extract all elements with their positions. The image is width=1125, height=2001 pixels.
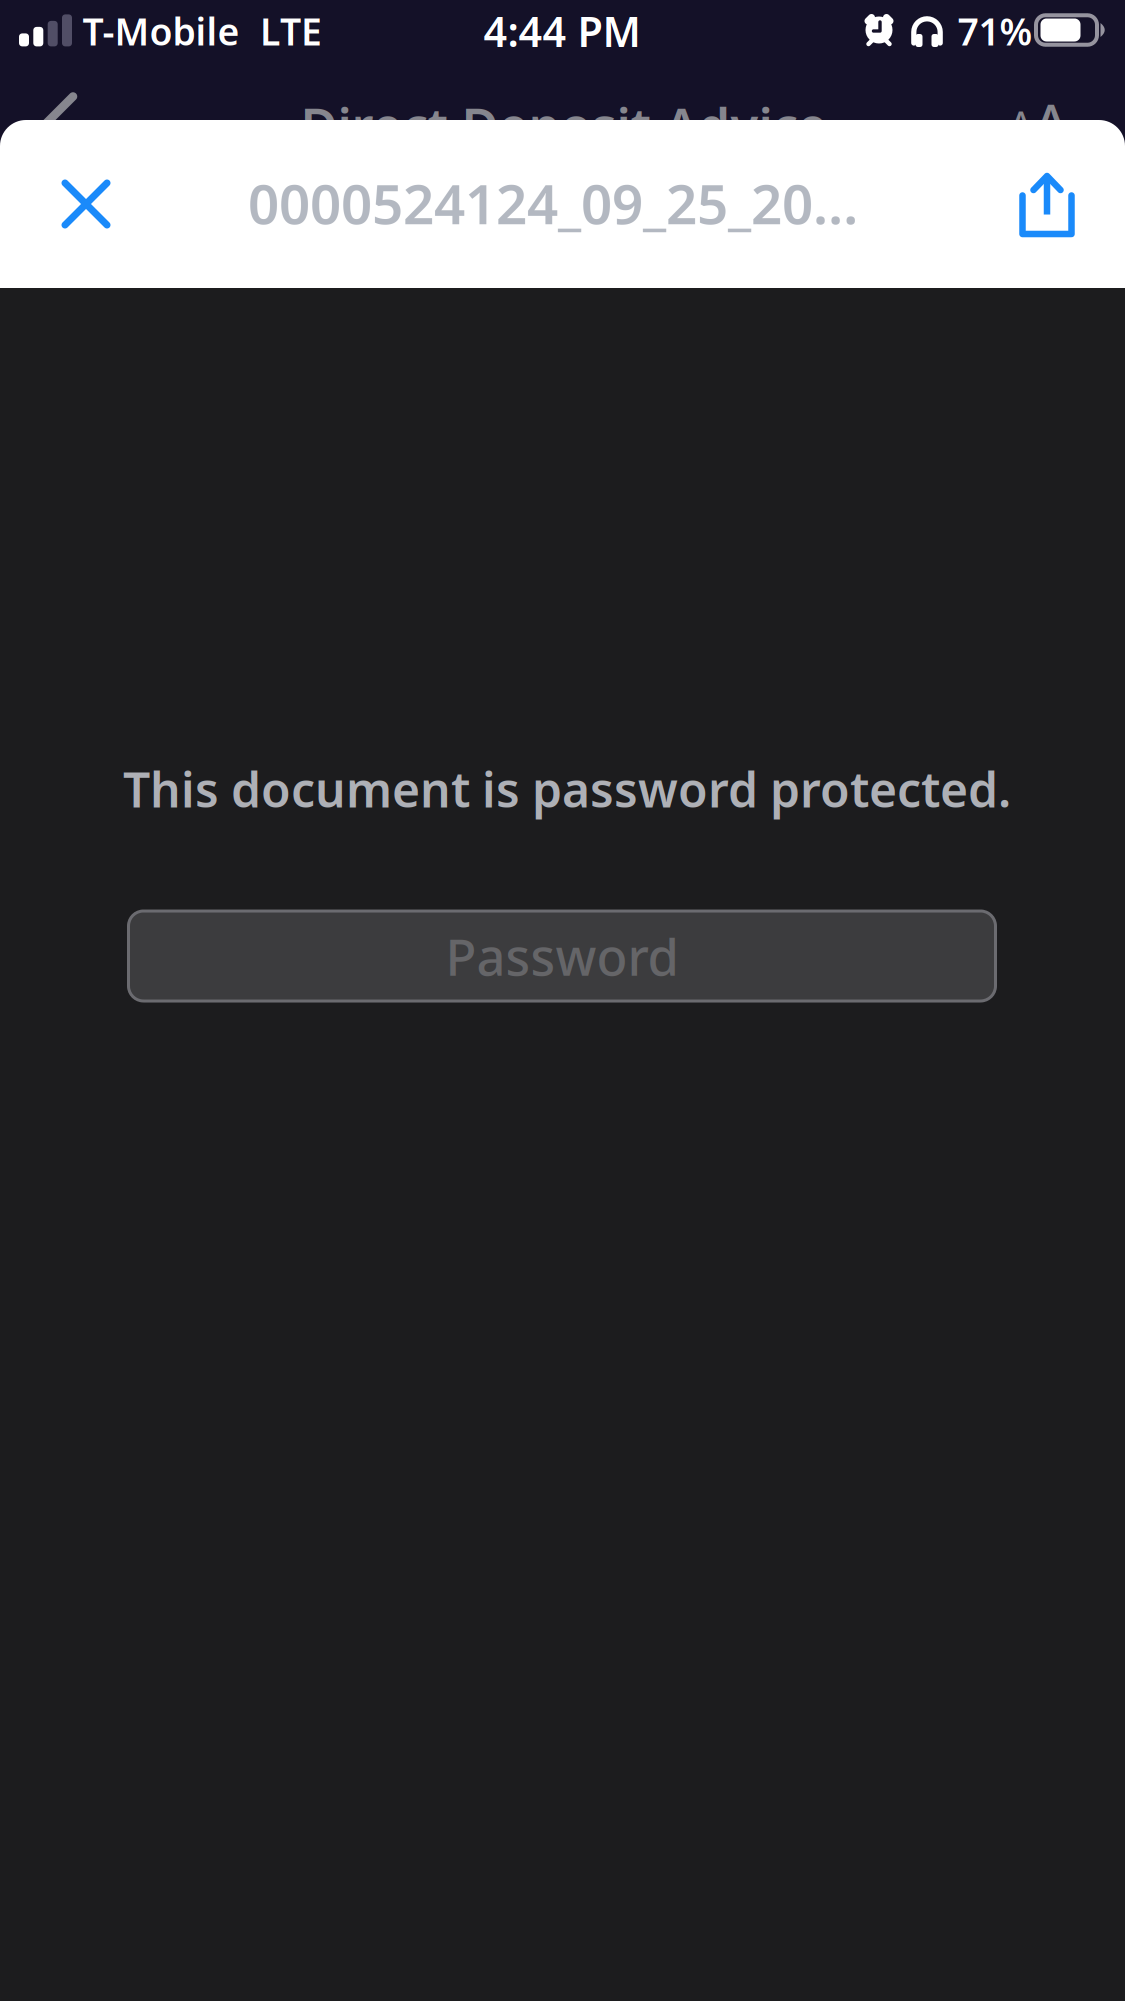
staticText: A [1009,100,1032,146]
staticText: A [1033,87,1068,157]
staticText: This document is password protected. [123,757,1011,821]
button[interactable]: Share [985,134,1109,274]
button[interactable]: Back [18,70,102,182]
staticText: 71% [957,6,1032,56]
staticText: LTE [260,6,322,56]
staticText: 4:44 PM [483,4,640,58]
staticText: T-Mobile [82,6,239,56]
staticText: Password [445,922,678,990]
staticText: 0000524124_09_25_20… [248,167,858,239]
staticText: Direct Deposit Advice [300,91,827,159]
button[interactable]: Close [24,134,148,274]
button[interactable]: Text size [978,70,1074,190]
button[interactable]: Password [128,911,995,1001]
